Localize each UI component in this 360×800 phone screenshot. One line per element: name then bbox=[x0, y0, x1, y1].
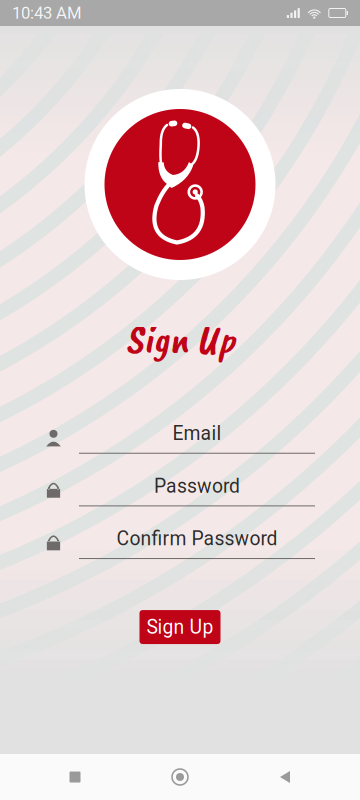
button[interactable]: Sign Up bbox=[139, 610, 220, 644]
staticText: Email bbox=[172, 422, 221, 445]
staticText: Sign Up bbox=[125, 313, 234, 365]
staticText: Confirm Password bbox=[116, 527, 277, 550]
button[interactable]: Recents bbox=[45, 755, 105, 799]
button[interactable]: Home bbox=[150, 755, 210, 799]
staticText: Sign Up bbox=[146, 616, 213, 638]
button[interactable]: Back bbox=[255, 755, 315, 799]
staticText: Password bbox=[154, 475, 240, 497]
staticText: 10:43 AM bbox=[12, 3, 82, 23]
